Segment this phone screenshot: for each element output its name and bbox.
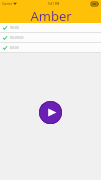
staticText: Carrier bbox=[2, 2, 12, 6]
staticText: Amber bbox=[30, 7, 72, 23]
staticText: 00:00:00 bbox=[10, 35, 24, 40]
button[interactable]: 60:00 bbox=[0, 43, 101, 52]
button[interactable]: 00:00:00 bbox=[0, 33, 101, 42]
staticText: 60:00 bbox=[10, 45, 19, 50]
button[interactable]: 90:00 bbox=[0, 23, 101, 32]
staticText: 90:00 bbox=[10, 25, 19, 30]
staticText: 9:41 PM bbox=[48, 2, 60, 6]
button[interactable]: Play bbox=[39, 101, 62, 124]
